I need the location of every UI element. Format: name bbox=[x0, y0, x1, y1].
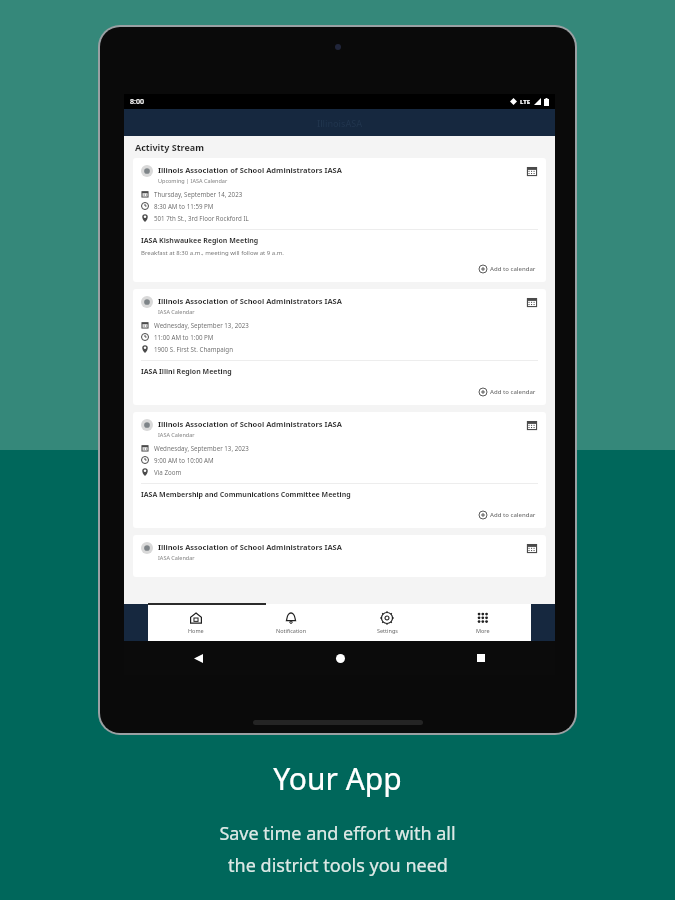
staticText: IASA Illini Region Meeting bbox=[141, 367, 232, 377]
staticText: Save time and effort with all bbox=[219, 821, 456, 846]
staticText: Wednesday, September 13, 2023 bbox=[154, 321, 249, 329]
staticText: Your App bbox=[273, 758, 402, 799]
button[interactable]: Home bbox=[148, 604, 243, 641]
button[interactable]: Settings bbox=[339, 604, 435, 641]
staticText: Illinois Association of School Administr… bbox=[158, 165, 342, 175]
staticText: Notification bbox=[276, 627, 307, 634]
button[interactable]: More bbox=[435, 604, 531, 641]
staticText: Wednesday, September 13, 2023 bbox=[154, 444, 249, 452]
staticText: Activity Stream bbox=[135, 141, 204, 153]
staticText: 1900 S. First St. Champaign bbox=[154, 345, 233, 353]
button[interactable]: Calendar bbox=[526, 542, 538, 554]
button[interactable]: Calendar bbox=[526, 296, 538, 308]
button[interactable]: Illinois Association of School Administr… bbox=[133, 289, 546, 405]
button[interactable]: Illinois Association of School Administr… bbox=[133, 412, 546, 528]
staticText: Via Zoom bbox=[154, 468, 182, 476]
staticText: Illinois Association of School Administr… bbox=[158, 542, 342, 552]
button[interactable]: Calendar bbox=[526, 165, 538, 177]
button[interactable]: Add to calendar bbox=[477, 386, 538, 398]
staticText: 11:00 AM to 1:00 PM bbox=[154, 333, 214, 341]
staticText: 8:30 AM to 11:59 PM bbox=[154, 202, 214, 210]
staticText: Home bbox=[188, 627, 204, 634]
button[interactable]: Illinois Association of School Administr… bbox=[133, 158, 546, 282]
staticText: Thursday, September 14, 2023 bbox=[154, 190, 243, 198]
staticText: 9:00 AM to 10:00 AM bbox=[154, 456, 214, 464]
button[interactable]: Add to calendar bbox=[477, 263, 538, 275]
staticText: IllinoisASA bbox=[317, 117, 363, 129]
button[interactable]: Calendar bbox=[526, 419, 538, 431]
staticText: Breakfast at 8:30 a.m., meeting will fol… bbox=[141, 249, 284, 257]
staticText: IASA Membership and Communications Commi… bbox=[141, 490, 351, 500]
staticText: IASA Kishwaukee Region Meeting bbox=[141, 236, 259, 246]
staticText: Settings bbox=[377, 627, 398, 634]
button[interactable]: Illinois Association of School Administr… bbox=[133, 535, 546, 577]
other: Back bbox=[194, 654, 203, 663]
staticText: Add to calendar bbox=[490, 388, 536, 396]
staticText: IASA Calendar bbox=[158, 431, 195, 438]
button[interactable]: Notification bbox=[243, 604, 339, 641]
staticText: Illinois Association of School Administr… bbox=[158, 296, 342, 306]
staticText: the district tools you need bbox=[228, 853, 448, 878]
staticText: LTE bbox=[520, 98, 531, 106]
staticText: Upcoming | IASA Calendar bbox=[158, 177, 228, 184]
staticText: Add to calendar bbox=[490, 511, 536, 519]
staticText: More bbox=[476, 627, 490, 634]
staticText: Illinois Association of School Administr… bbox=[158, 419, 342, 429]
staticText: 8:00 bbox=[130, 97, 144, 107]
staticText: Add to calendar bbox=[490, 265, 536, 273]
other: Home bbox=[336, 654, 345, 663]
staticText: 501 7th St., 3rd Floor Rockford IL bbox=[154, 214, 249, 222]
staticText: IASA Calendar bbox=[158, 308, 195, 315]
staticText: IASA Calendar bbox=[158, 554, 195, 561]
button[interactable]: Add to calendar bbox=[477, 509, 538, 521]
